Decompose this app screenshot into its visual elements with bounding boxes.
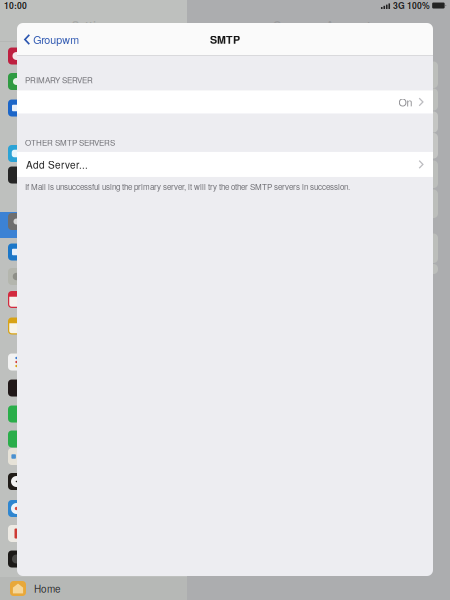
staticText: On xyxy=(398,94,412,110)
button[interactable]: Groupwm xyxy=(17,23,87,56)
staticText: PRIMARY SERVER xyxy=(25,74,93,85)
staticText: Settings xyxy=(72,17,116,32)
button[interactable]: On xyxy=(17,90,433,113)
staticText: 3G xyxy=(393,0,405,12)
staticText: Add Server... xyxy=(26,157,88,172)
staticText: 10:00 xyxy=(4,0,27,12)
staticText: Groupwm Account xyxy=(273,17,371,32)
staticText: Home xyxy=(34,581,61,596)
staticText: 100% xyxy=(407,0,430,12)
staticText: Groupwm xyxy=(33,32,79,47)
staticText: SMTP xyxy=(210,32,240,47)
staticText: OTHER SMTP SERVERS xyxy=(25,136,115,148)
staticText: If Mail is unsuccessful using the primar… xyxy=(25,181,350,192)
button[interactable]: Add Server... xyxy=(17,152,433,177)
